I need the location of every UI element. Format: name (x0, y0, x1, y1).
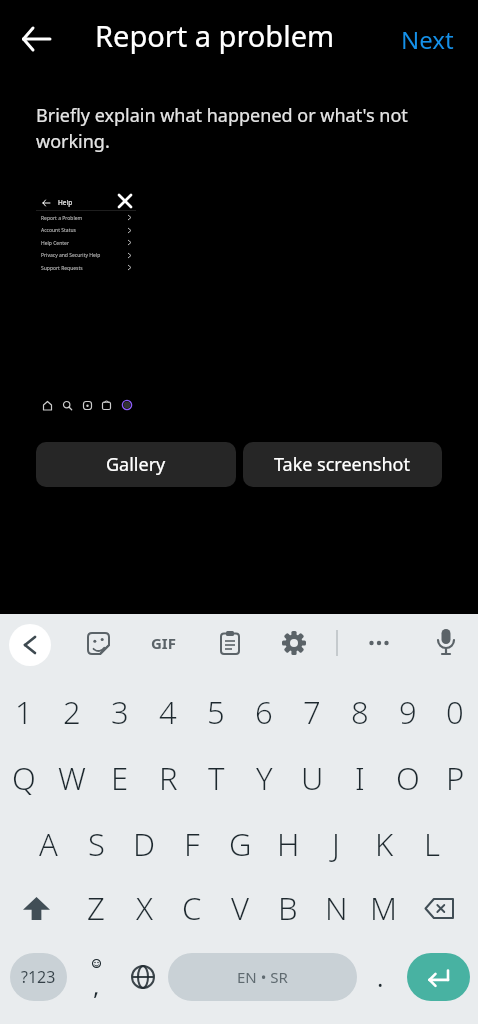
button[interactable]: R (144, 746, 192, 810)
button[interactable] (113, 189, 137, 213)
button[interactable]: Gallery (36, 442, 236, 487)
staticText: I (355, 757, 365, 799)
button[interactable]: T (192, 746, 240, 810)
button[interactable] (0, 876, 72, 940)
staticText: H (277, 823, 300, 865)
button[interactable]: J (312, 812, 360, 876)
button[interactable]: Help (36, 192, 136, 417)
staticText: 4 (159, 691, 177, 733)
button[interactable]: A (24, 812, 72, 876)
staticText: 6 (255, 691, 273, 733)
button[interactable]: 0 (432, 680, 478, 744)
staticText: 3 (111, 691, 129, 733)
staticText: 8 (351, 691, 369, 733)
staticText: 7 (303, 691, 321, 733)
button[interactable] (408, 876, 478, 940)
button[interactable]: L (408, 812, 456, 876)
button[interactable]: 3 (96, 680, 144, 744)
button[interactable]: 1 (0, 680, 48, 744)
staticText: J (332, 823, 340, 865)
staticText: Privacy and Security Help (41, 252, 101, 259)
button[interactable]: I (336, 746, 384, 810)
button[interactable]: N (312, 876, 360, 940)
button[interactable]: P (432, 746, 478, 810)
button[interactable] (360, 625, 397, 661)
button[interactable]: Take screenshot (243, 442, 442, 487)
staticText: Support Requests (41, 265, 83, 272)
button[interactable] (407, 953, 470, 1001)
button[interactable]: 6 (240, 680, 288, 744)
button[interactable]: D (120, 812, 168, 876)
button[interactable]: 5 (192, 680, 240, 744)
staticText: O (396, 757, 420, 799)
button[interactable]: GIF (143, 625, 183, 661)
staticText: A (39, 823, 58, 865)
button[interactable]: Y (240, 746, 288, 810)
button[interactable] (14, 19, 58, 59)
staticText: S (88, 823, 105, 865)
button[interactable]: Q (0, 746, 48, 810)
staticText: U (301, 757, 324, 799)
staticText: Next (401, 23, 454, 56)
button[interactable]: 8 (336, 680, 384, 744)
button[interactable]: W (48, 746, 96, 810)
button[interactable] (125, 959, 161, 995)
button[interactable]: E (96, 746, 144, 810)
staticText: B (278, 887, 298, 929)
staticText: C (182, 887, 202, 929)
button[interactable]: , (77, 944, 115, 1010)
button[interactable]: U (288, 746, 336, 810)
staticText: W (58, 757, 86, 799)
button[interactable]: C (168, 876, 216, 940)
button[interactable]: G (216, 812, 264, 876)
button[interactable]: K (360, 812, 408, 876)
button[interactable]: 2 (48, 680, 96, 744)
staticText: P (446, 757, 465, 799)
button[interactable]: V (216, 876, 264, 940)
staticText: D (133, 823, 156, 865)
button[interactable]: X (120, 876, 168, 940)
staticText: Q (12, 757, 36, 799)
button[interactable]: Z (72, 876, 120, 940)
button[interactable]: H (264, 812, 312, 876)
staticText: Z (87, 887, 105, 929)
button[interactable] (80, 625, 116, 661)
staticText: Briefly explain what happened or what's … (36, 103, 446, 154)
staticText: 5 (207, 691, 225, 733)
staticText: 0 (446, 691, 464, 733)
button[interactable]: EN • SR (168, 953, 357, 1001)
staticText: Help Center (41, 240, 69, 247)
button[interactable]: ?123 (10, 953, 67, 1001)
button[interactable]: M (360, 876, 408, 940)
staticText: F (184, 823, 200, 865)
staticText: Report a problem (95, 16, 335, 55)
staticText: N (325, 887, 348, 929)
button[interactable]: B (264, 876, 312, 940)
staticText: 1 (15, 691, 33, 733)
button[interactable] (428, 624, 464, 660)
button[interactable] (9, 624, 51, 666)
button[interactable]: . (362, 959, 398, 995)
staticText: X (136, 887, 153, 929)
staticText: E (111, 757, 129, 799)
staticText: G (229, 823, 252, 865)
button[interactable]: 7 (288, 680, 336, 744)
staticText: M (370, 887, 398, 929)
button[interactable]: 9 (384, 680, 432, 744)
staticText: R (159, 757, 178, 799)
button[interactable] (212, 625, 248, 661)
button[interactable]: O (384, 746, 432, 810)
button[interactable] (276, 625, 312, 661)
staticText: Account Status (41, 227, 76, 234)
staticText: 9 (399, 691, 417, 733)
button[interactable]: S (72, 812, 120, 876)
staticText: , (93, 969, 100, 1002)
staticText: . (377, 961, 384, 994)
button[interactable]: Next (392, 20, 462, 58)
staticText: Help (58, 198, 73, 207)
button[interactable]: F (168, 812, 216, 876)
staticText: Y (256, 757, 273, 799)
button[interactable]: 4 (144, 680, 192, 744)
staticText: T (208, 757, 225, 799)
staticText: Gallery (106, 452, 166, 477)
